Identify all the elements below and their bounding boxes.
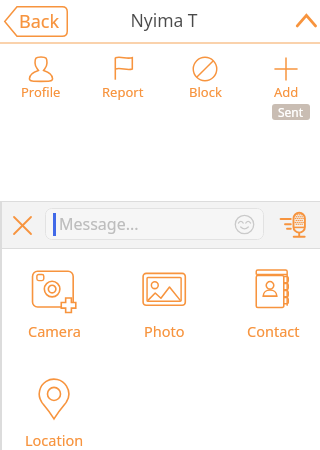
button[interactable]: Add — [256, 45, 316, 101]
button[interactable]: Contact — [229, 262, 317, 350]
staticText: Contact — [247, 321, 300, 341]
staticText: Location — [25, 430, 84, 450]
staticText: Block — [189, 83, 222, 101]
button[interactable]: Location — [10, 371, 98, 450]
staticText: Camera — [28, 321, 81, 341]
button[interactable]: Report — [93, 45, 153, 101]
button[interactable]: Profile — [11, 45, 71, 101]
button[interactable]: Message... — [45, 208, 264, 240]
staticText: Report — [102, 83, 144, 101]
staticText: Sent — [278, 104, 304, 120]
staticText: Message... — [59, 213, 139, 235]
button[interactable]: Record voice message — [274, 205, 314, 245]
staticText: Photo — [144, 321, 185, 341]
staticText: Back — [19, 9, 60, 34]
button[interactable]: Block — [175, 45, 235, 101]
button[interactable]: Collapse panel — [292, 10, 320, 32]
staticText: Nyima T — [130, 8, 198, 32]
staticText: Add — [274, 83, 299, 101]
staticText: Profile — [21, 83, 61, 101]
button[interactable]: Photo — [120, 262, 208, 350]
button[interactable]: Camera — [10, 262, 98, 350]
button[interactable]: Close panel — [4, 207, 41, 244]
button[interactable]: Back — [4, 6, 68, 37]
